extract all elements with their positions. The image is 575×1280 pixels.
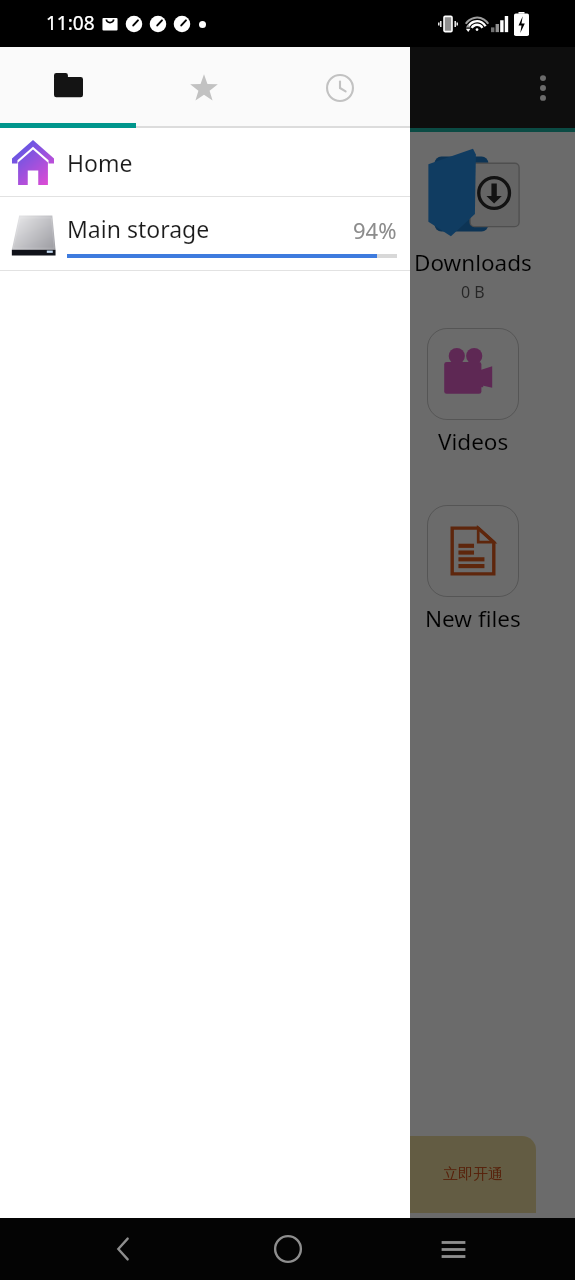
staticText: 94% — [353, 215, 397, 245]
button[interactable]: Favourites — [136, 47, 272, 128]
staticText: Main storage — [67, 213, 210, 244]
staticText: Downloads — [414, 247, 532, 278]
button[interactable]: Downloads — [414, 145, 532, 303]
staticText: 0 B — [461, 281, 485, 303]
button[interactable]: Recent apps — [428, 1224, 478, 1274]
button[interactable]: Home — [263, 1224, 313, 1274]
staticText: New files — [425, 603, 521, 634]
button[interactable]: New files — [425, 505, 521, 634]
button[interactable]: Main storage — [0, 197, 575, 270]
button[interactable]: Files — [0, 47, 136, 128]
button[interactable]: Back — [98, 1224, 148, 1274]
button[interactable]: More options — [521, 66, 565, 110]
button[interactable]: 立即开通 — [410, 1136, 536, 1213]
staticText: Home — [67, 147, 133, 178]
staticText: 11:08 — [46, 10, 95, 36]
button[interactable]: Videos — [427, 328, 519, 457]
button[interactable]: Recent — [272, 47, 408, 128]
button[interactable]: Home — [0, 128, 575, 196]
staticText: 立即开通 — [443, 1165, 503, 1184]
staticText: Videos — [438, 426, 509, 457]
